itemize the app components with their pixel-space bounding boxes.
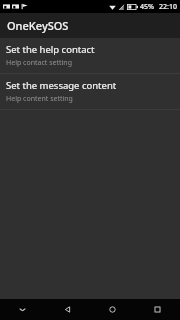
staticText: Help content setting: [6, 94, 73, 104]
button[interactable]: Hide navigation bar: [0, 299, 45, 320]
button[interactable]: Set the message content: [0, 74, 180, 109]
staticText: Help contact setting: [6, 58, 72, 68]
staticText: 45%: [140, 2, 154, 12]
button[interactable]: Recent apps: [135, 299, 180, 320]
button[interactable]: Back: [45, 299, 90, 320]
staticText: Set the message content: [6, 79, 117, 92]
button[interactable]: Home: [90, 299, 135, 320]
staticText: 22:10: [159, 2, 177, 12]
button[interactable]: Set the help contact: [0, 38, 180, 73]
staticText: Set the help contact: [6, 43, 95, 56]
staticText: OneKeySOS: [7, 18, 69, 33]
